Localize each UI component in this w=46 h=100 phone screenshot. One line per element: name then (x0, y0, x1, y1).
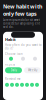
staticText: Daily (10, 68, 16, 72)
staticText: Weekly (28, 68, 37, 72)
staticText: How often do you want to do it? (5, 43, 42, 50)
staticText: Remind me (5, 77, 21, 81)
staticText: Habit (5, 37, 16, 42)
staticText: Lorem ipsum dolor sit amet consectetur a… (3, 18, 40, 29)
staticText: only few taps (3, 10, 37, 17)
button[interactable]: Habit icon (17, 57, 29, 61)
staticText: Choose icon (5, 52, 23, 56)
button[interactable]: Daily (5, 67, 22, 73)
staticText: Repeat (5, 63, 15, 66)
button[interactable]: Habit icon (29, 57, 41, 61)
staticText: New habit with (3, 3, 42, 10)
button[interactable]: Weekly (24, 67, 41, 73)
button[interactable]: Habit icon (5, 57, 17, 61)
